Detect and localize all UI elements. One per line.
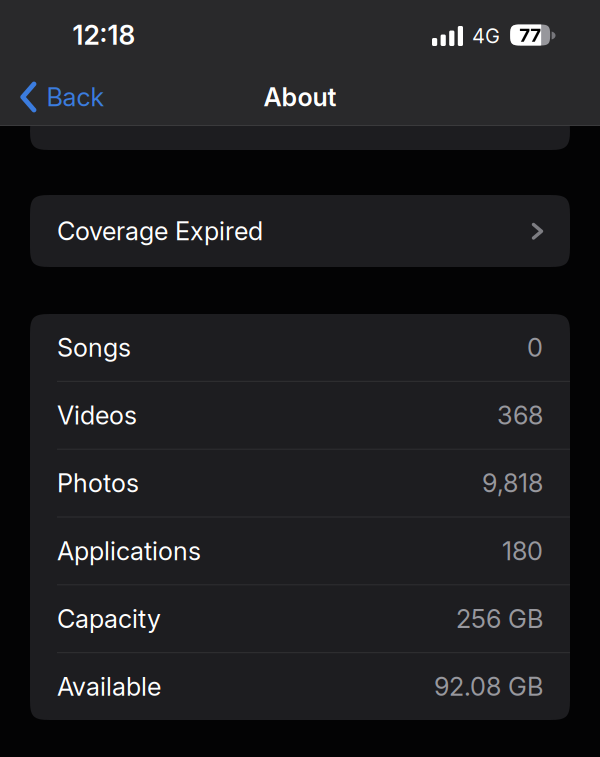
staticText: Photos bbox=[57, 468, 139, 498]
staticText: Capacity bbox=[57, 604, 161, 634]
staticText: 92.08 GB bbox=[434, 672, 543, 701]
staticText: Coverage Expired bbox=[57, 216, 263, 246]
staticText: 77 bbox=[519, 24, 541, 46]
button[interactable]: Back bbox=[19, 81, 104, 113]
staticText: Available bbox=[57, 672, 161, 701]
staticText: 12:18 bbox=[72, 19, 135, 51]
staticText: 256 GB bbox=[456, 604, 543, 634]
button[interactable]: Coverage Expired bbox=[30, 195, 570, 267]
staticText: 0 bbox=[527, 332, 543, 362]
staticText: 180 bbox=[502, 536, 543, 566]
staticText: About bbox=[263, 82, 336, 112]
staticText: Videos bbox=[57, 400, 137, 430]
staticText: Back bbox=[46, 82, 104, 112]
staticText: 368 bbox=[497, 400, 543, 430]
staticText: Songs bbox=[57, 332, 131, 362]
staticText: 4G bbox=[472, 24, 500, 48]
staticText: 9,818 bbox=[482, 468, 543, 498]
staticText: Applications bbox=[57, 536, 201, 566]
